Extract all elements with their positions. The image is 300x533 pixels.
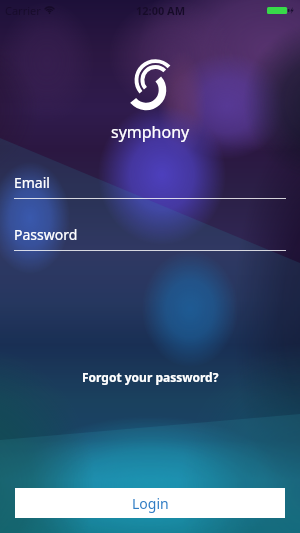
staticText: Forgot your password?: [82, 369, 219, 385]
staticText: Carrier: [5, 3, 41, 18]
staticText: Login: [132, 494, 169, 513]
staticText: Password: [14, 225, 78, 244]
button[interactable]: Login: [15, 488, 285, 518]
staticText: Email: [14, 173, 50, 192]
staticText: symphony: [111, 121, 190, 143]
button[interactable]: Forgot your password?: [76, 366, 225, 388]
staticText: 12:00 AM: [136, 3, 186, 18]
